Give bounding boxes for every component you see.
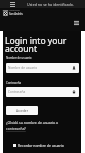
- button[interactable]: Contraseña: [6, 87, 79, 97]
- staticText: Contraseña: [6, 81, 22, 85]
- staticText: Nombre de usuario: [6, 56, 32, 60]
- button[interactable]: ¿Olvidó su nombre de usuario o contraseñ…: [6, 120, 61, 132]
- button[interactable]: Universidad: [3, 9, 23, 16]
- button[interactable]: Open navigation menu: [10, 2, 15, 7]
- staticText: Universidad: [9, 9, 20, 12]
- button[interactable]: Recordar nombre de usuario: [13, 143, 64, 148]
- staticText: Contraseña: [8, 90, 26, 94]
- staticText: Login into your account: [5, 35, 83, 55]
- staticText: Usted no se ha identificado.: [27, 2, 74, 7]
- staticText: Recordar nombre de usuario: [18, 143, 64, 148]
- staticText: San Andrés: [9, 12, 23, 16]
- staticText: Nombre de usuario: [8, 66, 38, 70]
- staticText: Acceder: [16, 109, 28, 113]
- button[interactable]: Nombre de usuario: [6, 63, 79, 73]
- button[interactable]: Acceder: [6, 106, 38, 115]
- button[interactable]: Toggle menu: [74, 21, 79, 25]
- staticText: ¿Olvidó su nombre de usuario o contraseñ…: [6, 120, 61, 132]
